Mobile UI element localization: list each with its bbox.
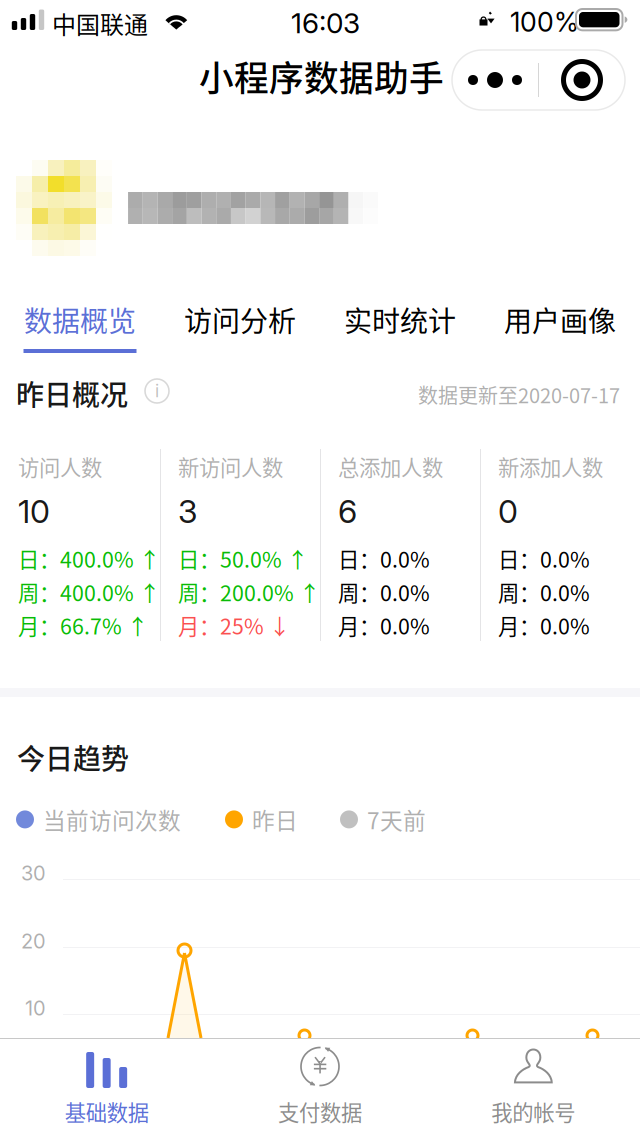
button[interactable]: 访问分析 xyxy=(160,299,320,357)
staticText: 新访问人数 xyxy=(178,451,283,482)
staticText: i xyxy=(155,380,159,401)
staticText: 昨日 xyxy=(252,803,298,836)
staticText: 周：200.0% ↑ xyxy=(178,576,320,607)
staticText: 基础数据 xyxy=(65,1096,149,1127)
staticText: 日：400.0% ↑ xyxy=(18,543,160,574)
staticText: 访问人数 xyxy=(18,451,102,482)
staticText: 日：0.0% xyxy=(498,543,590,574)
staticText: 当前访问次数 xyxy=(43,803,181,836)
staticText: 月：25% ↓ xyxy=(178,610,290,641)
staticText: 数据更新至2020-07-17 xyxy=(418,380,620,409)
staticText: 小程序数据助手 xyxy=(199,51,444,101)
staticText: 月：0.0% xyxy=(498,610,590,641)
staticText: 0 xyxy=(498,492,518,531)
button[interactable]: 基础数据 xyxy=(0,1039,213,1136)
staticText: 日：0.0% xyxy=(338,543,430,574)
staticText: 日：50.0% ↑ xyxy=(178,543,308,574)
staticText: 10 xyxy=(18,492,50,531)
staticText: 周：0.0% xyxy=(338,576,430,607)
staticText: 我的帐号 xyxy=(491,1096,575,1127)
staticText: 7天前 xyxy=(367,803,426,836)
staticText: 访问分析 xyxy=(184,299,296,340)
button[interactable]: 我的帐号 xyxy=(427,1039,640,1136)
staticText: 昨日概况 xyxy=(16,373,128,413)
staticText: 20 xyxy=(21,929,46,953)
staticText: 周：0.0% xyxy=(498,576,590,607)
staticText: 实时统计 xyxy=(344,299,456,340)
staticText: 100% xyxy=(510,6,579,38)
staticText: 用户画像 xyxy=(504,299,616,340)
staticText: 6 xyxy=(338,492,357,531)
button[interactable]: 支付数据 xyxy=(213,1039,427,1136)
staticText: 30 xyxy=(21,861,46,885)
staticText: 总添加人数 xyxy=(338,451,443,482)
staticText: 今日趋势 xyxy=(17,737,129,777)
staticText: 中国联通 xyxy=(52,6,148,41)
button[interactable]: 用户画像 xyxy=(480,299,640,357)
staticText: 新添加人数 xyxy=(498,451,603,482)
button[interactable]: 数据概览 xyxy=(0,299,160,357)
staticText: 月：0.0% xyxy=(338,610,430,641)
button[interactable]: 实时统计 xyxy=(320,299,480,357)
staticText: 周：400.0% ↑ xyxy=(18,576,160,607)
staticText: 3 xyxy=(178,492,197,531)
button[interactable]: More options xyxy=(452,50,625,110)
staticText: 月：66.7% ↑ xyxy=(18,610,148,641)
staticText: 支付数据 xyxy=(278,1096,362,1127)
staticText: 16:03 xyxy=(291,6,360,40)
staticText: 10 xyxy=(25,996,46,1020)
staticText: 数据概览 xyxy=(24,299,136,340)
